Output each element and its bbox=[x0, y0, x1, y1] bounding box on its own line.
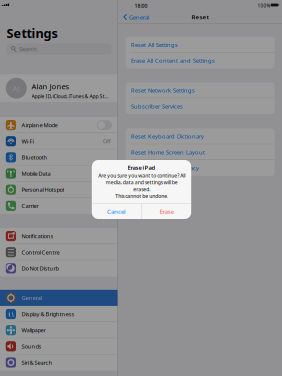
button[interactable]: Erase All Content and Settings bbox=[126, 53, 275, 68]
staticText: Personal Hotspot bbox=[21, 186, 64, 193]
button[interactable]: Wi-Fi bbox=[0, 133, 118, 149]
button[interactable]: Reset Location & Privacy bbox=[126, 160, 275, 176]
staticText: Erase iPad bbox=[127, 164, 155, 171]
button[interactable]: Mobile Data bbox=[0, 165, 118, 181]
staticText: General bbox=[21, 294, 41, 302]
staticText: Notifications bbox=[21, 232, 53, 240]
staticText: Wi-Fi bbox=[21, 137, 33, 145]
staticText: Carrier bbox=[21, 202, 38, 210]
staticText: Off bbox=[103, 138, 111, 145]
staticText: 18:00 bbox=[134, 2, 147, 9]
button[interactable]: Siri & Search bbox=[0, 354, 118, 370]
button[interactable]: Cancel bbox=[92, 204, 141, 219]
button[interactable]: Personal Hotspot bbox=[0, 182, 118, 198]
button[interactable]: General bbox=[123, 11, 150, 22]
staticText: Settings bbox=[6, 24, 57, 42]
staticText: Erase bbox=[159, 207, 173, 215]
staticText: Wallpaper bbox=[21, 326, 45, 334]
button[interactable]: General bbox=[0, 290, 118, 306]
staticText: Airplane Mode bbox=[21, 121, 57, 129]
staticText: Do Not Disturb bbox=[21, 264, 58, 272]
staticText: Erase All Content and Settings bbox=[131, 57, 215, 64]
button[interactable]: Reset Keyboard Dictionary bbox=[126, 128, 275, 144]
button[interactable]: Wallpaper bbox=[0, 322, 118, 338]
staticText: General bbox=[129, 13, 150, 21]
staticText: Display & Brightness bbox=[21, 310, 74, 318]
staticText: Reset Network Settings bbox=[131, 86, 195, 94]
staticText: Alan Jones bbox=[31, 81, 69, 92]
staticText: Control Centre bbox=[21, 248, 59, 256]
button[interactable]: Notifications bbox=[0, 228, 118, 244]
button[interactable]: Display & Brightness bbox=[0, 306, 118, 322]
staticText: 100% bbox=[258, 2, 271, 9]
staticText: Reset Home Screen Layout bbox=[131, 148, 205, 156]
button[interactable]: Reset Home Screen Layout bbox=[126, 144, 275, 160]
staticText: Reset Location & Privacy bbox=[131, 164, 199, 172]
staticText: Sounds bbox=[21, 342, 41, 350]
staticText: Subscriber Services bbox=[131, 102, 183, 110]
button[interactable]: Carrier bbox=[0, 198, 118, 214]
button[interactable]: Control Centre bbox=[0, 244, 118, 260]
button[interactable]: Airplane Mode bbox=[0, 117, 118, 133]
staticText: Are you sure you want to continue? All m… bbox=[98, 172, 185, 200]
button[interactable]: AJ bbox=[0, 74, 118, 102]
staticText: Reset All Settings bbox=[131, 41, 178, 49]
staticText: Reset bbox=[191, 13, 208, 21]
staticText: Cancel bbox=[107, 207, 126, 215]
button[interactable]: Reset All Settings bbox=[126, 37, 275, 53]
button[interactable]: Sounds bbox=[0, 338, 118, 354]
button[interactable]: Do Not Disturb bbox=[0, 260, 118, 276]
button[interactable]: Erase bbox=[142, 204, 191, 219]
staticText: Siri & Search bbox=[21, 359, 52, 366]
staticText: Search bbox=[19, 45, 37, 53]
staticText: Mobile Data bbox=[21, 170, 50, 177]
staticText: Reset Keyboard Dictionary bbox=[131, 132, 204, 140]
button[interactable]: Reset Network Settings bbox=[126, 82, 275, 98]
staticText: Apple ID, iCloud, iTunes & App St… bbox=[31, 93, 108, 100]
staticText: Bluetooth bbox=[21, 153, 47, 161]
staticText: AJ bbox=[13, 83, 20, 93]
button[interactable]: Bluetooth bbox=[0, 149, 118, 165]
button[interactable]: Subscriber Services bbox=[126, 98, 275, 114]
